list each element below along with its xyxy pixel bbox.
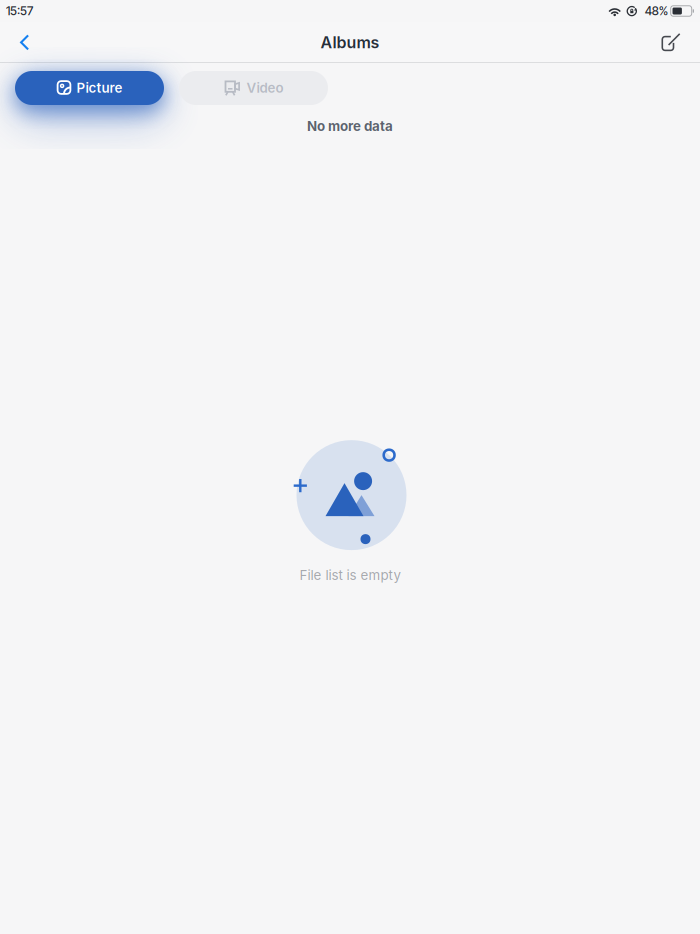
staticText: Video — [246, 80, 283, 96]
button[interactable]: Back — [4, 22, 46, 63]
staticText: 15:57 — [6, 4, 33, 18]
staticText: Albums — [320, 33, 379, 52]
button[interactable]: Picture — [15, 71, 164, 105]
staticText: File list is empty — [299, 567, 400, 583]
button[interactable]: Video — [179, 71, 328, 105]
staticText: Picture — [76, 80, 122, 96]
button[interactable]: Compose — [650, 22, 692, 63]
staticText: 48% — [645, 4, 668, 18]
staticText: No more data — [307, 118, 393, 134]
